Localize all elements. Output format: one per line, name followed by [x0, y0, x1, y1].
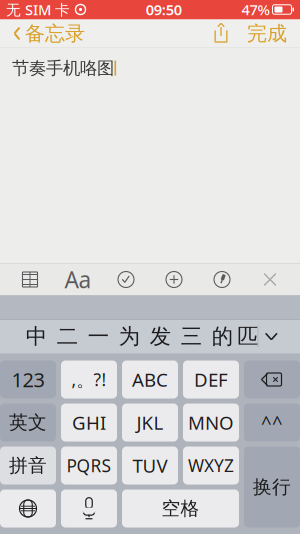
button[interactable]: 三	[176, 319, 207, 353]
button[interactable]: 手写	[202, 263, 242, 295]
staticText: 三	[181, 323, 202, 350]
button[interactable]: 备忘录	[4, 18, 94, 48]
button[interactable]: ^^	[244, 403, 300, 441]
button[interactable]: 分享	[204, 18, 238, 48]
button[interactable]: 123	[0, 360, 56, 398]
staticText: 中	[26, 323, 47, 350]
button[interactable]: GHI	[61, 403, 117, 441]
button[interactable]: 匹	[238, 319, 258, 353]
staticText: ABC	[132, 367, 168, 392]
staticText: 的	[212, 323, 233, 350]
staticText: WXYZ	[188, 454, 234, 477]
staticText: 英文	[9, 411, 47, 434]
button[interactable]: 格式	[58, 263, 98, 295]
staticText: 47%	[241, 0, 269, 19]
staticText: 发	[150, 323, 171, 350]
button[interactable]: 清单	[106, 263, 146, 295]
staticText: PQRS	[66, 454, 111, 477]
button[interactable]: 发	[145, 319, 176, 353]
staticText: 无 SIM 卡	[6, 0, 70, 19]
staticText: 换行	[253, 475, 291, 498]
button[interactable]: DEF	[183, 360, 239, 398]
staticText: JKL	[136, 410, 163, 435]
button[interactable]: 拼音	[0, 446, 56, 484]
staticText: 二	[57, 323, 78, 350]
button[interactable]: MNO	[183, 403, 239, 441]
button[interactable]: 为	[114, 319, 145, 353]
button[interactable]: 空格	[122, 489, 239, 527]
button[interactable]: 英文	[0, 403, 56, 441]
button[interactable]: JKL	[122, 403, 178, 441]
staticText: 为	[119, 323, 140, 350]
button[interactable]: 关闭键盘	[250, 263, 290, 295]
staticText: TUV	[132, 453, 167, 478]
staticText: ^^	[261, 410, 283, 435]
staticText: 09:50	[146, 0, 182, 19]
staticText: GHI	[72, 410, 106, 435]
staticText: DEF	[194, 367, 228, 392]
staticText: 拼音	[9, 454, 47, 477]
staticText: 完成	[247, 21, 287, 46]
staticText: Aa	[64, 264, 91, 294]
button[interactable]: 完成	[238, 18, 296, 48]
button[interactable]: 切换键盘	[0, 489, 56, 527]
button[interactable]: 一	[83, 319, 114, 353]
button[interactable]: 展开候选	[258, 319, 284, 353]
staticText: MNO	[188, 410, 234, 435]
button[interactable]: 二	[52, 319, 83, 353]
button[interactable]: 的	[207, 319, 238, 353]
button[interactable]: 中	[21, 319, 52, 353]
button[interactable]: PQRS	[61, 446, 117, 484]
button[interactable]: 删除	[244, 360, 300, 398]
staticText: ,。?!	[71, 368, 106, 391]
staticText: 一	[88, 323, 109, 350]
button[interactable]: 添加	[154, 263, 194, 295]
button[interactable]: WXYZ	[183, 446, 239, 484]
staticText: 节奏手机咯图	[12, 57, 114, 79]
button[interactable]: 换行	[244, 446, 300, 527]
button[interactable]: TUV	[122, 446, 178, 484]
staticText: 匹	[237, 323, 258, 350]
staticText: 空格	[161, 497, 199, 520]
button[interactable]: ABC	[122, 360, 178, 398]
staticText: 123	[11, 366, 44, 393]
button[interactable]: ,。?!	[61, 360, 117, 398]
staticText: 备忘录	[25, 21, 85, 46]
button[interactable]: 表格	[10, 263, 50, 295]
button[interactable]: 语音输入	[61, 489, 117, 527]
